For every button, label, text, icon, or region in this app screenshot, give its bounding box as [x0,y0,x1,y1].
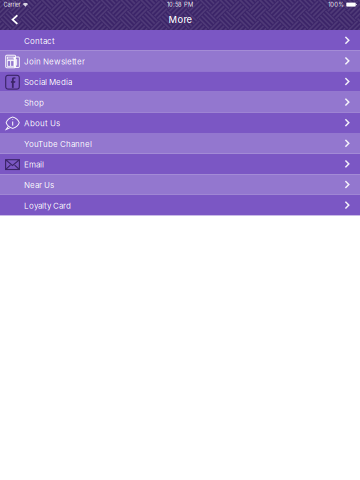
button[interactable]: YouTube Channel [0,133,360,154]
staticText: About Us [24,119,60,128]
button[interactable]: Loyalty Card [0,195,360,215]
button[interactable]: Contact [0,30,360,51]
button[interactable]: Social Media [0,71,360,92]
button[interactable]: Near Us [0,174,360,195]
button[interactable]: About Us [0,112,360,133]
staticText: Loyalty Card [24,201,71,211]
staticText: Near Us [24,180,54,190]
staticText: YouTube Channel [24,139,92,149]
staticText: Contact [24,36,55,46]
staticText: 100% [328,1,344,8]
staticText: More [168,14,191,25]
button[interactable]: Email [0,154,360,174]
staticText: Email [24,160,44,169]
staticText: Social Media [24,77,72,87]
button[interactable]: Shop [0,92,360,112]
staticText: Join Newsletter [24,57,85,66]
staticText: Shop [24,98,44,108]
button[interactable]: Back [3,9,27,30]
staticText: 10:58 PM [167,1,193,8]
button[interactable]: Join Newsletter [0,51,360,71]
staticText: Carrier [3,1,20,8]
